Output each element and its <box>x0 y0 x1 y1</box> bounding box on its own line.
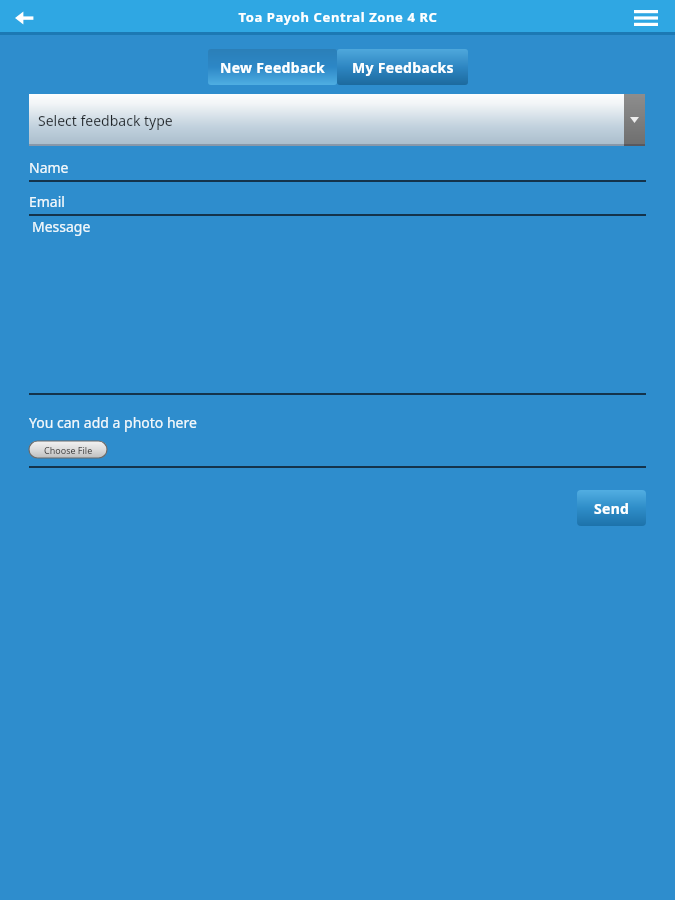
staticText: Message <box>32 217 91 236</box>
button[interactable]: Select feedback type <box>29 94 645 146</box>
staticText: Select feedback type <box>38 111 173 130</box>
staticText: My Feedbacks <box>352 58 454 77</box>
button[interactable]: My Feedbacks <box>337 49 468 85</box>
button[interactable]: Choose File <box>29 441 107 458</box>
button[interactable]: Name <box>29 158 69 177</box>
staticText: Choose File <box>44 444 93 456</box>
button[interactable]: Send <box>577 490 646 526</box>
button[interactable]: New Feedback <box>208 49 337 85</box>
button[interactable]: Back <box>4 0 46 35</box>
staticText: New Feedback <box>220 58 326 77</box>
staticText: Name <box>29 158 69 177</box>
button[interactable]: Email <box>29 192 65 211</box>
staticText: Send <box>594 499 630 518</box>
button[interactable]: You can add a photo here <box>29 413 197 432</box>
staticText: You can add a photo here <box>29 413 197 432</box>
button[interactable]: Message <box>32 217 91 236</box>
staticText: Toa Payoh Central Zone 4 RC <box>238 8 438 26</box>
button[interactable]: Menu <box>625 0 667 35</box>
staticText: Email <box>29 192 65 211</box>
